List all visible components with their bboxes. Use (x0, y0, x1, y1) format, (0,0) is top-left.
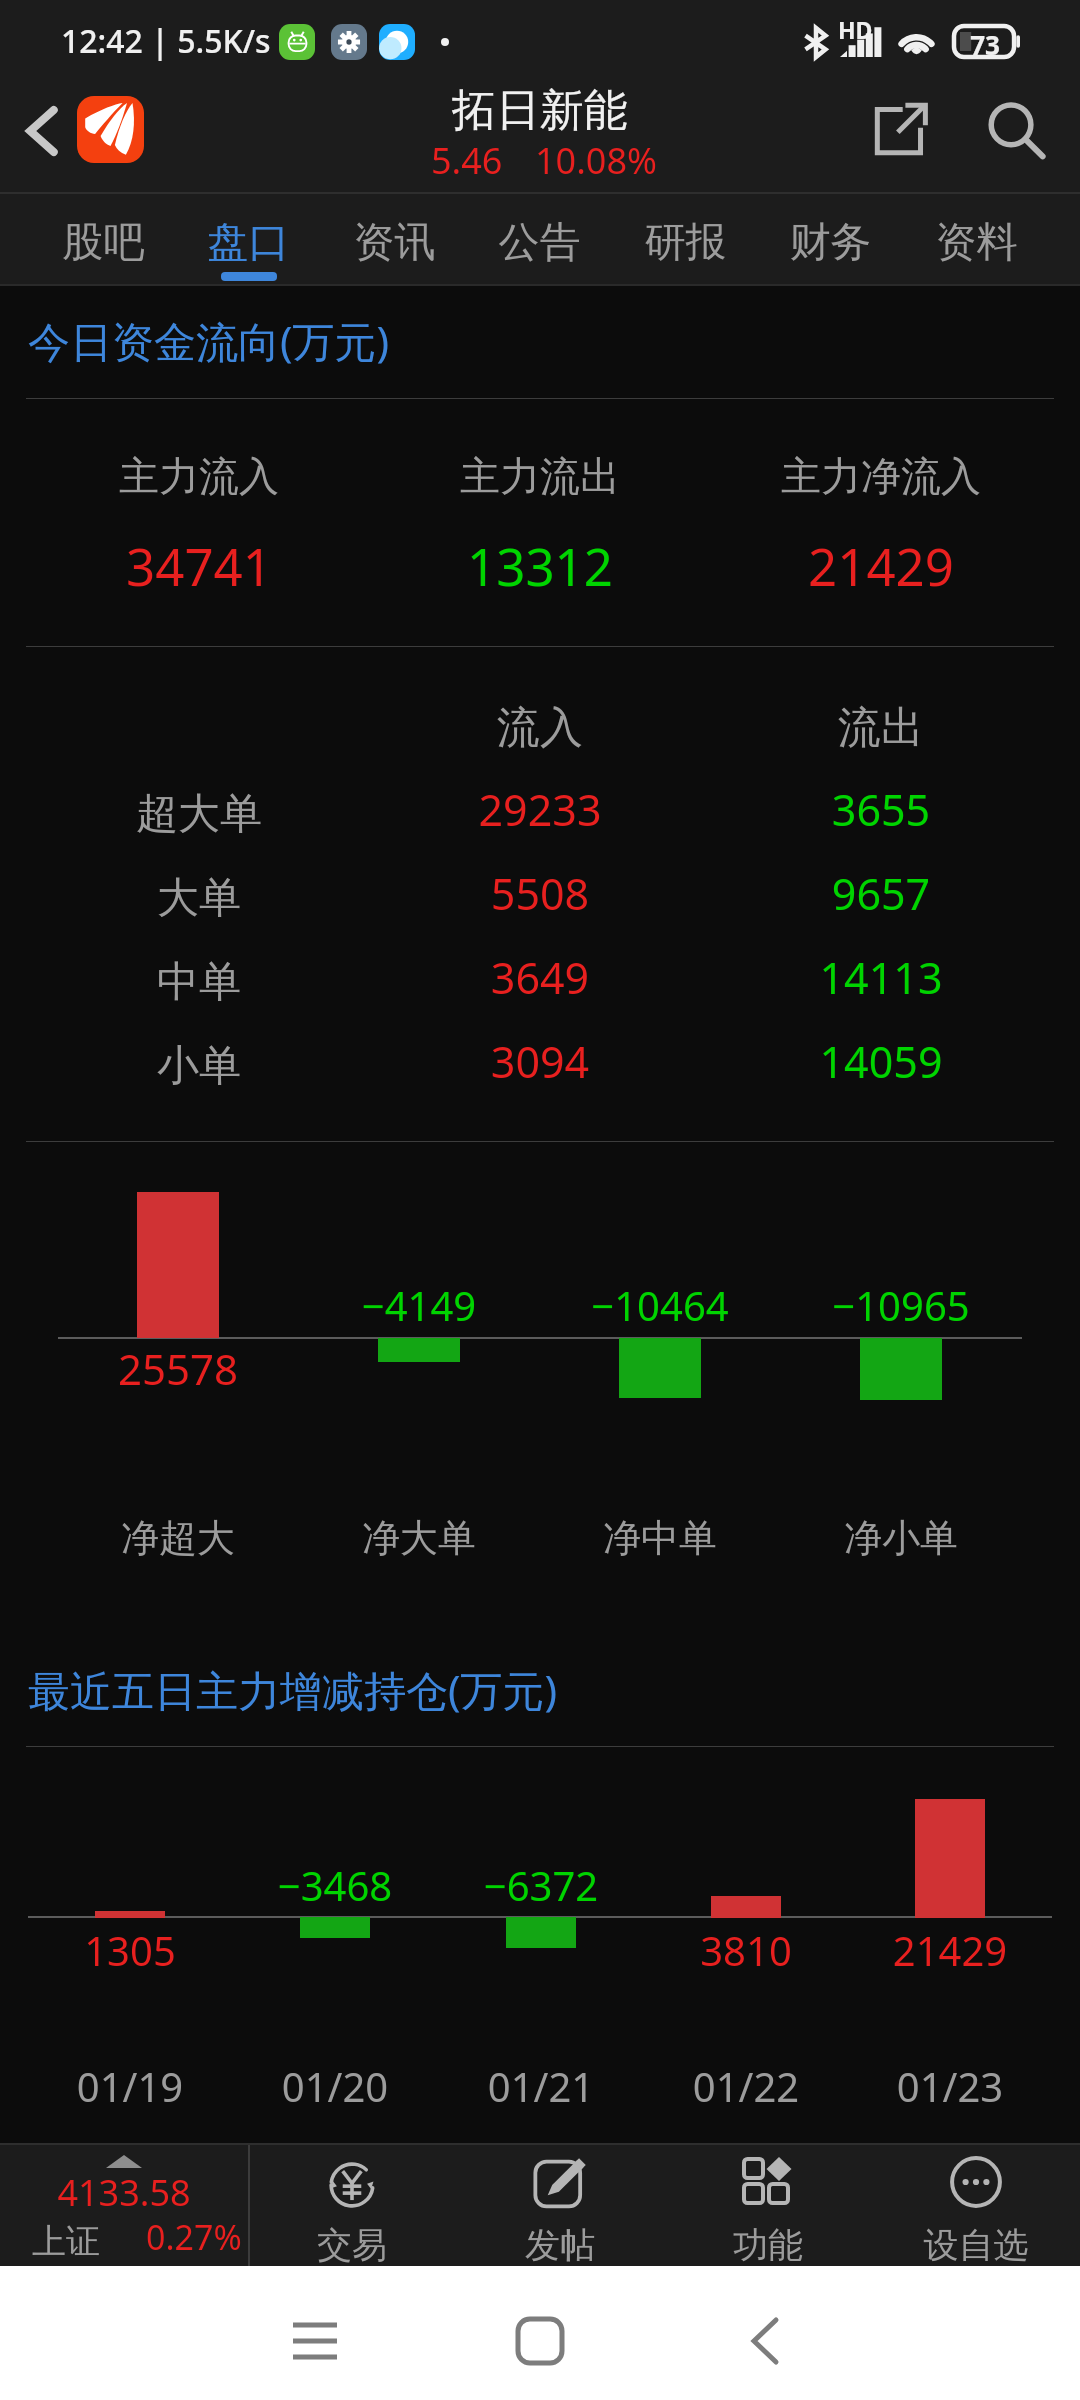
staticText: 最近五日主力增减持仓(万元) (28, 1661, 558, 1718)
button[interactable]: Back (690, 2266, 840, 2400)
button[interactable]: 研报 (613, 194, 758, 284)
staticText: 13312 (200, 531, 880, 600)
staticText: 14059 (541, 1032, 1080, 1091)
staticText: 研报 (613, 217, 758, 269)
staticText: 主力净流入 (541, 451, 1080, 501)
staticText: 主力流入 (0, 451, 539, 501)
staticText: 公告 (467, 217, 612, 269)
staticText: 21429 (541, 531, 1080, 600)
button[interactable]: Home (465, 2266, 615, 2400)
staticText: 盘口 (176, 217, 321, 269)
staticText: 财务 (758, 217, 903, 269)
button[interactable]: Share (850, 80, 950, 180)
staticText: 净小单 (561, 1514, 1080, 1562)
staticText: 中单 (0, 956, 539, 1009)
staticText: −4149 (79, 1278, 759, 1332)
staticText: −3468 (0, 1858, 675, 1912)
staticText: 14113 (541, 948, 1080, 1007)
staticText: 上证 (32, 2220, 100, 2263)
staticText: 29233 (200, 780, 880, 839)
staticText: 流入 (200, 701, 880, 755)
staticText: 21429 (610, 1923, 1080, 1977)
staticText: 净超大 (0, 1514, 518, 1562)
staticText: 大单 (0, 872, 539, 925)
staticText: 1305 (0, 1923, 470, 1977)
staticText: 净大单 (79, 1514, 759, 1562)
staticText: 01/23 (610, 2059, 1080, 2113)
staticText: 3810 (406, 1923, 1080, 1977)
staticText: 交易 (248, 2223, 456, 2267)
staticText: 5.46 (431, 136, 503, 185)
staticText: 73 (970, 27, 1000, 62)
staticText: −10965 (561, 1278, 1080, 1332)
button[interactable]: Recent apps (240, 2266, 390, 2400)
button[interactable]: 资讯 (322, 194, 467, 284)
staticText: 01/22 (406, 2059, 1080, 2113)
staticText: 设自选 (872, 2223, 1080, 2267)
staticText: 超大单 (0, 788, 539, 841)
staticText: 净中单 (320, 1514, 1000, 1562)
staticText: 3649 (200, 948, 880, 1007)
button[interactable]: 盘口 (176, 194, 321, 284)
staticText: 股吧 (31, 217, 176, 269)
button[interactable]: 财务 (758, 194, 903, 284)
button[interactable]: 设自选 (872, 2145, 1080, 2266)
staticText: 12:42 | 5.5K/s (61, 19, 271, 63)
button[interactable]: 交易 (248, 2145, 456, 2266)
staticText: 4133.58 (0, 2168, 248, 2217)
staticText: 01/21 (201, 2059, 881, 2113)
staticText: 资料 (904, 217, 1049, 269)
button[interactable]: 公告 (467, 194, 612, 284)
staticText: 3094 (200, 1032, 880, 1091)
staticText: 功能 (664, 2223, 872, 2267)
staticText: 01/20 (0, 2059, 675, 2113)
staticText: 01/19 (0, 2059, 470, 2113)
staticText: 34741 (0, 531, 539, 600)
staticText: 0.27% (146, 2214, 242, 2260)
button[interactable]: 功能 (664, 2145, 872, 2266)
staticText: −6372 (201, 1858, 881, 1912)
button[interactable]: 发帖 (456, 2145, 664, 2266)
staticText: 资讯 (322, 217, 467, 269)
staticText: −10464 (320, 1278, 1000, 1332)
staticText: 9657 (541, 864, 1080, 923)
button[interactable]: 4133.58 (0, 2145, 248, 2266)
button[interactable]: 资料 (904, 194, 1049, 284)
staticText: 主力流出 (200, 451, 880, 501)
button[interactable]: Back (8, 97, 76, 165)
staticText: 10.08% (535, 136, 657, 185)
staticText: 发帖 (456, 2223, 664, 2267)
button[interactable]: 股吧 (31, 194, 176, 284)
staticText: 今日资金流向(万元) (28, 312, 390, 369)
staticText: 拓日新能 (200, 83, 880, 138)
staticText: 小单 (0, 1040, 539, 1093)
staticText: HD (838, 14, 873, 45)
button[interactable]: East Money home (77, 96, 144, 163)
staticText: 5508 (200, 864, 880, 923)
staticText: 流出 (541, 701, 1080, 755)
button[interactable]: Search (966, 81, 1066, 181)
staticText: 3655 (541, 780, 1080, 839)
staticText: 25578 (0, 1340, 518, 1397)
